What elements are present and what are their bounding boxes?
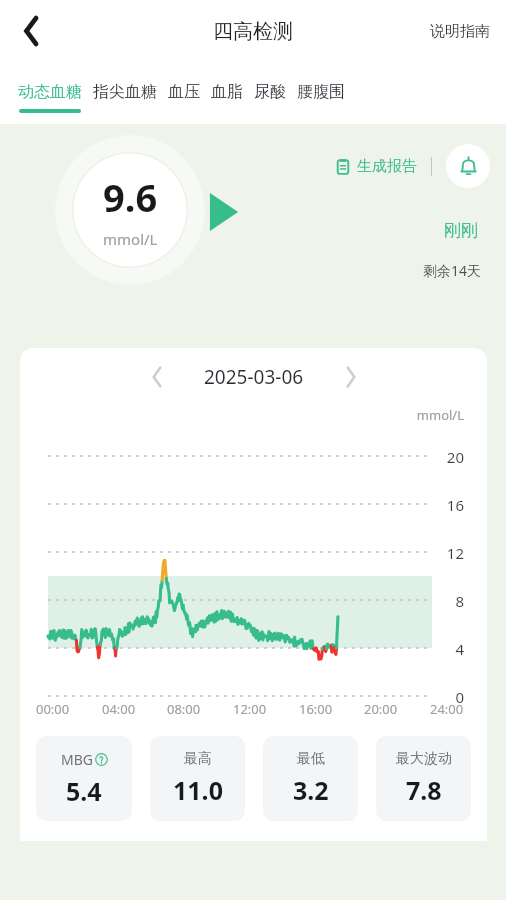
staticText: mmol/L [103,229,158,249]
staticText: 生成报告 [357,157,417,176]
button[interactable]: 最大波动 [376,736,471,821]
staticText: 说明指南 [430,22,490,41]
staticText: 24:00 [430,700,464,718]
staticText: 00:00 [36,700,70,718]
staticText: 指尖血糖 [93,82,157,102]
staticText: 最大波动 [396,750,452,768]
staticText: MBG [61,750,93,769]
staticText: 2025-03-06 [204,364,304,390]
button[interactable]: 最低 [263,736,358,821]
staticText: 5.4 [66,774,102,808]
staticText: 尿酸 [254,82,286,102]
button[interactable]: Next day [332,358,370,396]
staticText: 16:00 [299,700,333,718]
staticText: 剩余14天 [423,261,482,280]
button[interactable]: 尿酸 [254,62,286,109]
staticText: 20 [20,447,464,467]
staticText: 11.0 [173,773,223,807]
staticText: 8 [20,591,464,611]
button[interactable]: 最高 [150,736,245,821]
staticText: 12:00 [233,700,267,718]
button[interactable]: 腰腹围 [297,62,345,109]
staticText: 四高检测 [213,19,293,44]
staticText: 血脂 [211,82,243,102]
staticText: 08:00 [167,700,201,718]
button[interactable]: 动态血糖 [18,62,82,113]
button[interactable]: 血压 [168,62,200,109]
button[interactable]: 指尖血糖 [93,62,157,109]
staticText: 16 [20,495,464,515]
button[interactable]: Back [10,9,54,53]
staticText: 血压 [168,82,200,102]
button[interactable]: 说明指南 [414,12,506,51]
button[interactable]: Current glucose 9.6 mmol/L [52,132,208,288]
staticText: 20:00 [364,700,398,718]
button[interactable]: MBG [36,736,132,821]
staticText: 04:00 [102,700,136,718]
staticText: 最低 [297,750,325,768]
staticText: 动态血糖 [18,82,82,102]
button[interactable]: Previous day [138,358,176,396]
staticText: 腰腹围 [297,82,345,102]
button[interactable]: 生成报告 [333,151,419,182]
staticText: 4 [20,639,464,659]
button[interactable]: Alerts [446,144,490,188]
staticText: 7.8 [406,773,442,807]
staticText: 最高 [184,750,212,768]
staticText: 3.2 [293,773,329,807]
button[interactable]: 血脂 [211,62,243,109]
staticText: 9.6 [103,171,158,223]
staticText: 0 [20,687,464,707]
staticText: 12 [20,543,464,563]
staticText: 刚刚 [444,220,478,241]
staticText: mmol/L [20,406,464,424]
